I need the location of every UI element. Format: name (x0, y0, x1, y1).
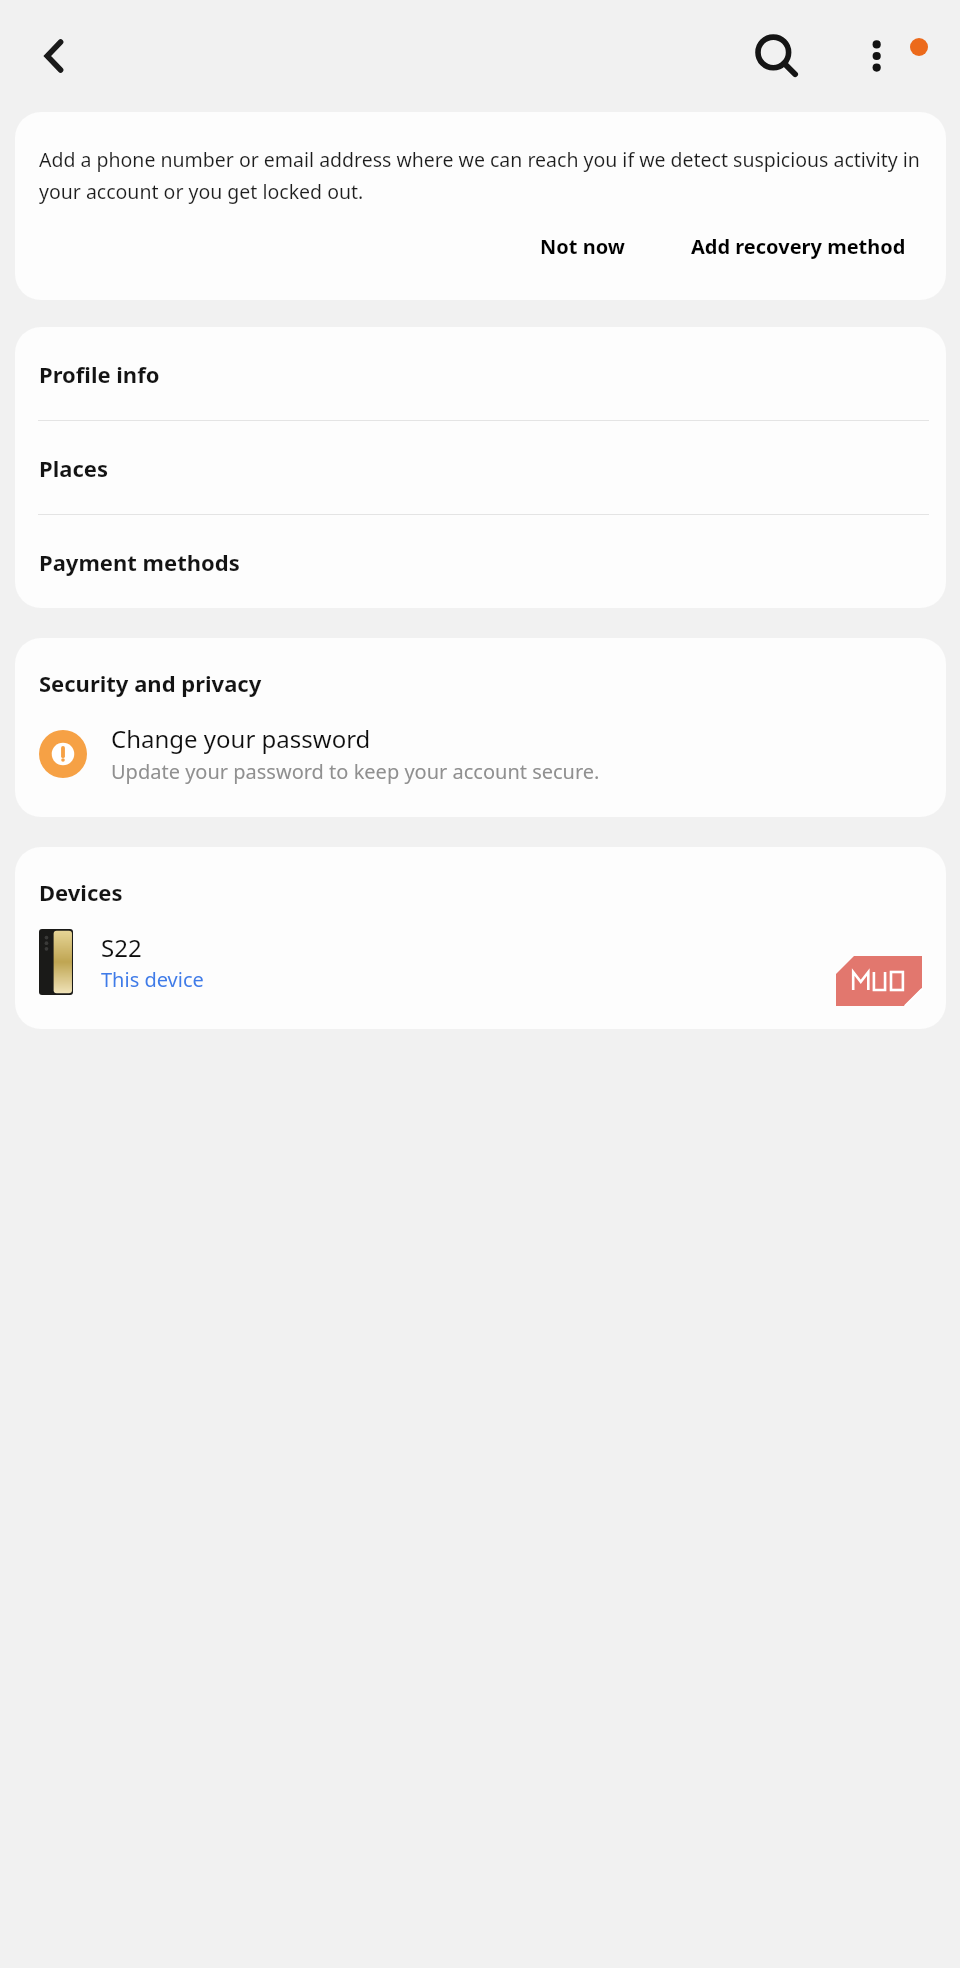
staticText: Update your password to keep your accoun… (111, 758, 600, 785)
staticText: Profile info (39, 359, 160, 389)
button[interactable]: Profile info (15, 327, 946, 420)
button[interactable]: Change your password (15, 698, 946, 817)
staticText: Add a phone number or email address wher… (39, 146, 926, 205)
button[interactable]: Places (15, 421, 946, 514)
staticText: Change your password (111, 722, 371, 755)
staticText: Places (39, 453, 108, 483)
button[interactable]: More options (850, 27, 908, 85)
staticText: Security and privacy (39, 668, 262, 698)
button[interactable]: Payment methods (15, 515, 946, 608)
button[interactable]: S22 (15, 907, 946, 1029)
button[interactable]: Back (22, 28, 78, 84)
staticText: Add recovery method (691, 233, 906, 260)
button[interactable]: Search (746, 26, 806, 86)
button[interactable]: Not now (522, 223, 643, 270)
staticText: S22 (101, 931, 142, 964)
staticText: Devices (39, 877, 123, 907)
staticText: This device (101, 966, 204, 993)
staticText: Not now (540, 233, 625, 260)
button[interactable]: Add recovery method (673, 223, 924, 270)
staticText: Payment methods (39, 547, 240, 577)
